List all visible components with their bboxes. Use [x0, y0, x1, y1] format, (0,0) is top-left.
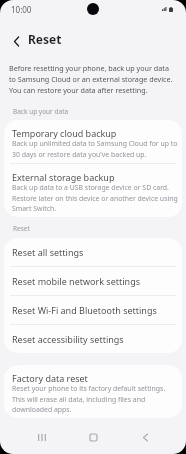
staticText: Reset all settings	[12, 246, 84, 258]
staticText: Reset	[13, 224, 30, 233]
button[interactable]: Home	[81, 425, 105, 449]
staticText: Back up data to a USB storage device or …	[12, 183, 179, 213]
staticText: Reset Wi-Fi and Bluetooth settings	[12, 304, 157, 316]
button[interactable]: Back	[133, 425, 157, 449]
button[interactable]: Factory data reset	[4, 365, 182, 418]
button[interactable]: Reset mobile network settings	[4, 267, 182, 295]
staticText: Reset	[28, 31, 62, 47]
staticText: 10:00	[11, 4, 32, 15]
button[interactable]: Recents	[30, 425, 54, 449]
staticText: External storage backup	[12, 171, 115, 183]
button[interactable]: Reset Wi-Fi and Bluetooth settings	[4, 296, 182, 324]
button[interactable]: Temporary cloud backup	[4, 120, 182, 163]
button[interactable]: External storage backup	[4, 164, 182, 217]
button[interactable]: Navigate up	[5, 30, 27, 52]
staticText: Before resetting your phone, back up you…	[9, 63, 177, 95]
staticText: Factory data reset	[12, 372, 88, 384]
button[interactable]: Reset all settings	[4, 238, 182, 266]
staticText: Reset your phone to its factory default …	[12, 384, 179, 414]
staticText: Back up your data	[13, 107, 69, 116]
staticText: Back up unlimited data to Samsung Cloud …	[12, 139, 179, 159]
button[interactable]: Reset accessibility settings	[4, 325, 182, 353]
staticText: Temporary cloud backup	[12, 127, 117, 139]
staticText: Reset mobile network settings	[12, 275, 140, 287]
staticText: Reset accessibility settings	[12, 333, 124, 345]
